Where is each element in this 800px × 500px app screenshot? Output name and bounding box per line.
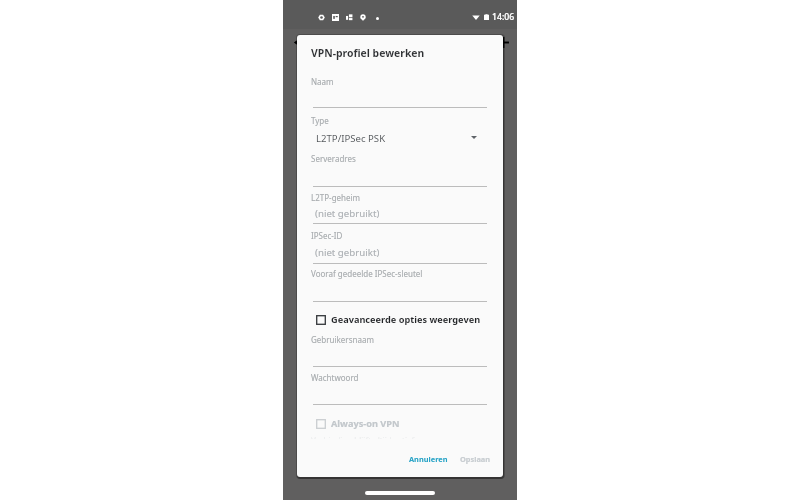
button[interactable]: Serveradres	[309, 150, 487, 188]
button[interactable]: Type	[309, 112, 487, 148]
staticText: Wachtwoord	[311, 372, 359, 383]
staticText: Annuleren	[409, 454, 448, 464]
staticText: Geavanceerde opties weergeven	[331, 313, 481, 326]
button[interactable]: Annuleren	[403, 450, 454, 468]
staticText: IPSec-ID	[311, 230, 343, 241]
staticText: Type	[311, 115, 329, 126]
staticText: Opslaan	[460, 454, 491, 464]
staticText: (niet gebruikt)	[315, 246, 380, 259]
button[interactable]: Opslaan	[454, 450, 497, 468]
staticText: 14:06	[492, 11, 515, 23]
button[interactable]: Always-on VPN	[316, 417, 400, 430]
button[interactable]: Wachtwoord	[309, 370, 487, 406]
button[interactable]: Geavanceerde opties weergeven	[316, 313, 481, 326]
staticText: Verbinding blijft altijd actief	[311, 437, 415, 439]
staticText: L2TP-geheim	[311, 192, 361, 203]
button[interactable]: Open dropdown	[471, 136, 477, 139]
staticText: Always-on VPN	[331, 417, 400, 430]
button[interactable]: Back	[293, 36, 304, 49]
button[interactable]: Add	[497, 36, 510, 49]
staticText: L2TP/IPSec PSK	[316, 132, 386, 145]
button[interactable]: Naam	[309, 72, 487, 109]
button[interactable]: Vooraf gedeelde IPSec-sleutel	[309, 266, 487, 303]
button[interactable]: Gebruikersnaam	[309, 331, 487, 368]
staticText: Serveradres	[311, 153, 356, 164]
button[interactable]: IPSec-ID	[309, 228, 487, 265]
staticText: (niet gebruikt)	[315, 207, 380, 220]
button[interactable]: L2TP-geheim	[309, 190, 487, 225]
staticText: Vooraf gedeelde IPSec-sleutel	[311, 268, 423, 279]
staticText: VPN-profiel bewerken	[311, 46, 425, 60]
staticText: Naam	[311, 76, 334, 87]
staticText: Gebruikersnaam	[311, 334, 374, 345]
